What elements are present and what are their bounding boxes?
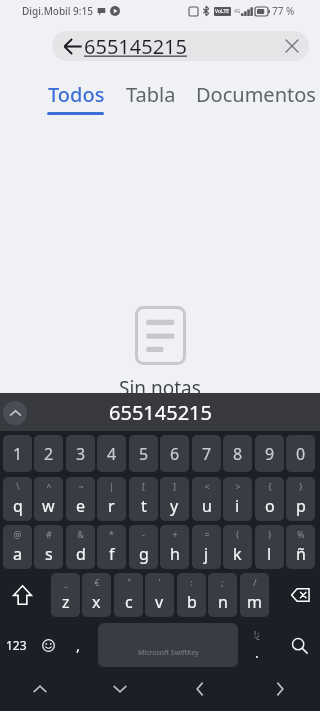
staticText: 9: [265, 443, 275, 465]
staticText: d: [76, 543, 86, 565]
staticText: [: [142, 480, 145, 492]
staticText: !¿: [254, 629, 260, 640]
staticText: ): [268, 528, 271, 540]
button[interactable]: ': [145, 573, 174, 617]
staticText: ]: [173, 480, 176, 492]
staticText: %: [297, 528, 305, 540]
staticText: ñ: [296, 543, 306, 565]
button[interactable]: 5: [129, 435, 158, 472]
button[interactable]: ,: [63, 623, 93, 667]
staticText: \: [16, 480, 20, 492]
staticText: /: [253, 576, 257, 588]
button[interactable]: @: [3, 525, 32, 569]
staticText: s: [45, 543, 53, 565]
button[interactable]: [: [129, 477, 158, 521]
button[interactable]: Todos: [27, 76, 126, 112]
staticText: g: [139, 543, 149, 565]
staticText: *: [109, 528, 114, 540]
staticText: y: [170, 495, 179, 517]
button[interactable]: 9: [255, 435, 284, 472]
staticText: q: [13, 495, 23, 517]
button[interactable]: -: [129, 525, 158, 569]
staticText: 2: [44, 443, 54, 465]
button[interactable]: Clear: [279, 31, 304, 61]
staticText: }: [299, 480, 303, 492]
staticText: 7: [202, 443, 212, 465]
button[interactable]: ;: [208, 573, 237, 617]
button[interactable]: &: [66, 525, 95, 569]
staticText: ': [158, 576, 161, 588]
button[interactable]: Expand: [3, 401, 27, 425]
button[interactable]: #: [34, 525, 63, 569]
button[interactable]: 7: [192, 435, 221, 472]
button[interactable]: (: [223, 525, 252, 569]
staticText: u: [202, 495, 212, 517]
staticText: e: [76, 495, 86, 517]
button[interactable]: Emoji: [33, 623, 63, 667]
staticText: c: [125, 591, 133, 613]
staticText: 4G: [234, 8, 241, 15]
button[interactable]: }: [286, 477, 315, 521]
button[interactable]: 0: [286, 435, 315, 472]
staticText: ^: [46, 480, 52, 492]
button[interactable]: Shift: [4, 573, 40, 617]
staticText: -: [142, 528, 145, 540]
staticText: @: [13, 528, 22, 540]
button[interactable]: +: [160, 525, 189, 569]
button[interactable]: ": [114, 573, 143, 617]
staticText: Microsoft SwiftKey: [138, 648, 199, 658]
button[interactable]: 4: [97, 435, 126, 472]
button[interactable]: _: [51, 573, 80, 617]
button[interactable]: =: [192, 525, 221, 569]
button[interactable]: Tabla: [104, 76, 198, 112]
staticText: >: [235, 480, 241, 492]
button[interactable]: Back: [180, 673, 220, 705]
staticText: _: [64, 576, 68, 588]
staticText: b: [187, 591, 197, 613]
button[interactable]: {: [255, 477, 284, 521]
button[interactable]: 2: [34, 435, 63, 472]
button[interactable]: /: [240, 573, 269, 617]
button[interactable]: !¿: [242, 623, 272, 667]
staticText: VoLTE: [215, 8, 230, 15]
button[interactable]: ^: [34, 477, 63, 521]
staticText: x: [92, 591, 101, 613]
button[interactable]: :: [177, 573, 206, 617]
button[interactable]: €: [82, 573, 111, 617]
staticText: 0: [296, 443, 306, 465]
button[interactable]: %: [286, 525, 315, 569]
button[interactable]: 1: [3, 435, 32, 472]
staticText: m: [247, 591, 262, 613]
button[interactable]: ]: [160, 477, 189, 521]
button[interactable]: |: [97, 477, 126, 521]
button[interactable]: ): [255, 525, 284, 569]
staticText: 77 %: [272, 4, 295, 18]
button[interactable]: Backspace: [282, 573, 318, 617]
staticText: &: [77, 528, 84, 540]
button[interactable]: 8: [223, 435, 252, 472]
button[interactable]: Forward: [260, 673, 300, 705]
staticText: w: [42, 495, 55, 517]
staticText: o: [265, 495, 275, 517]
button[interactable]: Down: [100, 673, 140, 705]
button[interactable]: Documentos: [196, 76, 320, 112]
staticText: Todos: [48, 81, 105, 108]
staticText: ~: [78, 480, 84, 492]
button[interactable]: >: [223, 477, 252, 521]
button[interactable]: *: [97, 525, 126, 569]
button[interactable]: Back: [52, 31, 309, 61]
button[interactable]: \: [3, 477, 32, 521]
staticText: t: [141, 495, 147, 517]
staticText: Sin notas: [119, 375, 201, 401]
button[interactable]: 3: [66, 435, 95, 472]
button[interactable]: 6: [160, 435, 189, 472]
staticText: +: [172, 528, 178, 540]
button[interactable]: ~: [66, 477, 95, 521]
button[interactable]: 123: [0, 623, 33, 667]
button[interactable]: Up: [20, 673, 60, 705]
button[interactable]: Search: [281, 623, 317, 667]
staticText: |: [109, 480, 114, 492]
button[interactable]: Microsoft SwiftKey: [98, 623, 238, 667]
staticText: ,: [76, 635, 81, 655]
button[interactable]: <: [192, 477, 221, 521]
